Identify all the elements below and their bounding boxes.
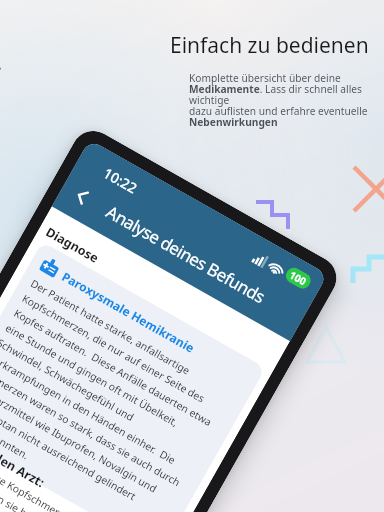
staticText: Der Patient hatte starke, anfallsartige … bbox=[0, 276, 239, 512]
staticText: Diagnose bbox=[43, 223, 102, 267]
staticText: Fragen an den Arzt: bbox=[0, 417, 48, 491]
staticText: Paroxysmale Hemikranie bbox=[59, 268, 198, 356]
staticText: Komplette übersicht über deine Medikamen… bbox=[189, 71, 379, 129]
staticText: Einfach zu bedienen bbox=[170, 31, 369, 60]
button[interactable]: Paroxysmale Hemikranie bbox=[0, 241, 266, 512]
staticText: Wann traten diese Kopfschmerzen zum erst… bbox=[0, 433, 150, 512]
staticText: Analyse deines Befunds bbox=[102, 200, 269, 308]
staticText: Mächtig bbox=[0, 65, 6, 121]
button[interactable]: Back bbox=[60, 174, 103, 218]
staticText: 10:22 bbox=[100, 163, 141, 197]
staticText: 100 bbox=[287, 268, 310, 289]
